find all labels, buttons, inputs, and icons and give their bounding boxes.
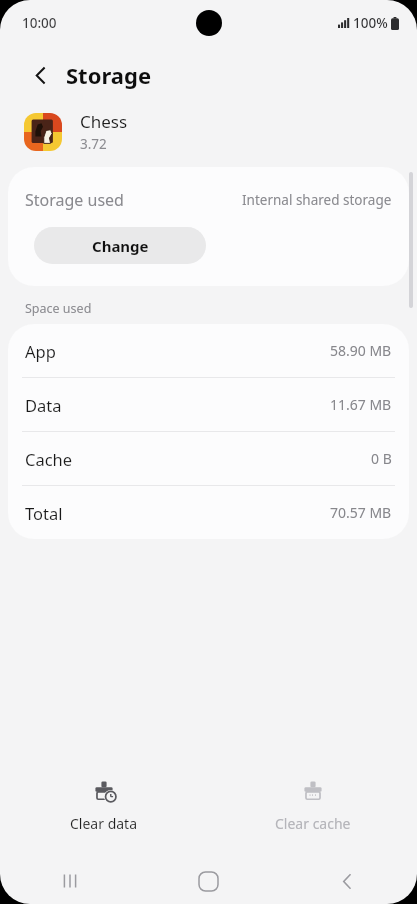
staticText: 100% xyxy=(353,14,388,32)
button[interactable]: Total xyxy=(8,486,409,539)
button[interactable]: Cache xyxy=(8,432,409,485)
button[interactable]: Home xyxy=(139,858,278,904)
staticText: Total xyxy=(25,502,63,524)
button[interactable]: Recent apps xyxy=(0,858,139,904)
staticText: 10:00 xyxy=(22,14,57,32)
staticText: Clear cache xyxy=(275,814,351,833)
staticText: 70.57 MB xyxy=(330,503,392,522)
staticText: Chess xyxy=(80,110,128,133)
staticText: Clear data xyxy=(70,814,138,833)
staticText: Storage xyxy=(66,60,152,90)
button[interactable]: App xyxy=(8,324,409,377)
button[interactable]: Back xyxy=(18,53,62,97)
button[interactable]: Clear cache xyxy=(208,772,417,858)
button[interactable]: Storage used xyxy=(8,167,409,221)
button[interactable]: Clear data xyxy=(0,772,208,858)
button[interactable]: Data xyxy=(8,378,409,431)
staticText: 3.72 xyxy=(80,135,107,153)
button[interactable]: Change xyxy=(34,227,206,264)
staticText: Internal shared storage xyxy=(242,191,392,209)
staticText: 58.90 MB xyxy=(330,341,392,360)
staticText: Space used xyxy=(25,300,92,317)
staticText: Storage used xyxy=(25,189,124,211)
button[interactable]: Back xyxy=(278,858,417,904)
staticText: 11.67 MB xyxy=(330,395,392,414)
staticText: Data xyxy=(25,394,62,416)
staticText: 0 B xyxy=(371,449,392,468)
staticText: App xyxy=(25,340,56,362)
staticText: Cache xyxy=(25,448,73,470)
staticText: Change xyxy=(92,236,149,256)
